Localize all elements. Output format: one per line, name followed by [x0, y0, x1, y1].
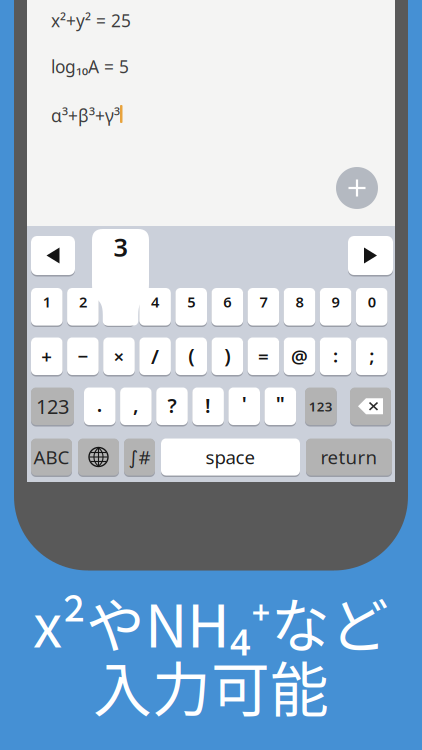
button[interactable]: . [84, 387, 116, 425]
staticText: @ [291, 344, 308, 369]
staticText: ! [205, 392, 211, 419]
button[interactable]: space [161, 438, 300, 475]
staticText: 1 [43, 292, 51, 311]
button[interactable]: , [120, 387, 152, 425]
button[interactable]: @ [284, 337, 315, 375]
staticText: log₁₀A = 5 [51, 55, 129, 78]
staticText: 入力可能 [93, 643, 329, 728]
staticText: space [205, 445, 255, 469]
staticText: ' [242, 390, 247, 417]
button[interactable]: − [67, 337, 99, 375]
staticText: 6 [223, 292, 231, 311]
staticText: return [320, 445, 377, 469]
staticText: 8 [295, 292, 303, 311]
staticText: ? [167, 392, 176, 419]
staticText: x²やNH₄⁺など [33, 579, 389, 665]
staticText: − [77, 344, 88, 369]
button[interactable]: ) [211, 337, 243, 375]
button[interactable]: + [31, 337, 63, 375]
button[interactable]: 9 [320, 288, 351, 325]
staticText: ; [369, 343, 374, 368]
staticText: α³+β³+γ³ [51, 104, 120, 127]
button[interactable]: ! [192, 387, 224, 425]
staticText: 7 [259, 292, 267, 311]
button[interactable]: ? [156, 387, 188, 425]
button[interactable]: × [103, 337, 135, 375]
staticText: : [333, 343, 338, 368]
button[interactable]: / [139, 337, 171, 375]
button[interactable]: 123 [305, 387, 337, 425]
staticText: 123 [309, 397, 333, 415]
button[interactable]: 123 [31, 387, 74, 425]
staticText: . [97, 391, 103, 418]
button[interactable]: ABC [31, 438, 72, 475]
staticText: ∫# [128, 445, 150, 469]
button[interactable]: 6 [211, 288, 243, 325]
button[interactable]: ; [356, 337, 387, 375]
staticText: 9 [332, 292, 340, 311]
button[interactable]: ( [175, 337, 207, 375]
button[interactable]: Next [348, 236, 393, 275]
staticText: 4 [151, 292, 159, 311]
staticText: ABC [33, 445, 69, 469]
staticText: + [41, 344, 52, 369]
staticText: = [258, 344, 269, 369]
staticText: " [276, 390, 285, 417]
button[interactable]: Add note [336, 167, 378, 209]
button[interactable]: = [248, 337, 279, 375]
button[interactable]: 2 [67, 288, 99, 325]
button[interactable]: Delete [350, 387, 391, 425]
staticText: ) [224, 342, 230, 369]
staticText: 2 [79, 292, 87, 311]
button[interactable]: 7 [248, 288, 279, 325]
staticText: × [113, 344, 124, 369]
staticText: 123 [36, 393, 69, 420]
staticText: ( [188, 342, 194, 369]
button[interactable]: 8 [284, 288, 315, 325]
button[interactable]: 4 [139, 288, 171, 325]
button[interactable]: 5 [175, 288, 207, 325]
staticText: , [133, 391, 139, 418]
button[interactable]: : [320, 337, 351, 375]
staticText: 3 [113, 230, 127, 264]
staticText: 0 [368, 292, 376, 311]
staticText: x²+y² = 25 [51, 9, 131, 32]
button[interactable]: 1 [31, 288, 63, 325]
staticText: / [151, 343, 159, 370]
button[interactable]: return [306, 438, 392, 475]
button[interactable]: ' [228, 387, 260, 425]
button[interactable]: " [264, 387, 296, 425]
button[interactable]: Previous [31, 236, 75, 275]
button[interactable]: ∫# [124, 438, 155, 475]
button[interactable]: 3 [103, 288, 135, 325]
button[interactable]: 0 [356, 288, 387, 325]
staticText: 5 [187, 292, 195, 311]
button[interactable]: Next keyboard [78, 438, 119, 475]
